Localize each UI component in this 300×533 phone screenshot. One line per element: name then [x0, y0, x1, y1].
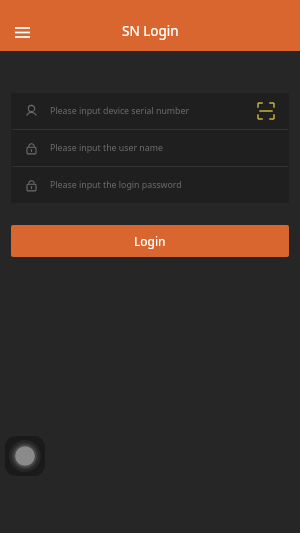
- button[interactable]: Please input the user name: [11, 130, 289, 166]
- button[interactable]: Assistive touch: [5, 436, 45, 476]
- staticText: Please input the login password: [50, 179, 182, 191]
- button[interactable]: Menu: [5, 15, 39, 49]
- button[interactable]: Scan QR code: [253, 98, 279, 124]
- staticText: Please input the user name: [50, 142, 163, 154]
- staticText: Please input device serial number: [50, 105, 190, 117]
- button[interactable]: Please input device serial number: [11, 93, 289, 129]
- button[interactable]: Please input the login password: [11, 167, 289, 203]
- staticText: SN Login: [122, 22, 179, 40]
- button[interactable]: Login: [11, 225, 289, 257]
- staticText: Login: [134, 233, 166, 249]
